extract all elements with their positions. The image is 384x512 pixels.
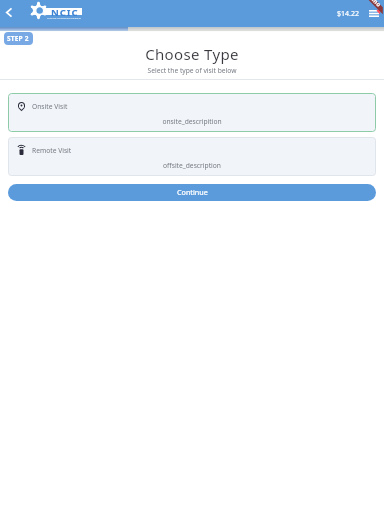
- staticText: offsite_description: [8, 161, 376, 170]
- staticText: Onsite Visit: [32, 102, 68, 111]
- staticText: Choose Type: [0, 44, 384, 64]
- staticText: Select the type of visit below: [0, 66, 384, 75]
- staticText: onsite_descripition: [8, 117, 376, 126]
- button[interactable]: Onsite Visit: [8, 93, 376, 132]
- button[interactable]: Continue: [8, 184, 376, 201]
- button[interactable]: Back: [1, 0, 17, 27]
- button[interactable]: Remote Visit: [8, 137, 376, 176]
- staticText: INMATE COMMUNICATIONS: [47, 16, 81, 19]
- button[interactable]: Menu: [365, 0, 381, 27]
- staticText: STEP 2: [7, 34, 29, 43]
- staticText: demo: [365, 0, 383, 9]
- button[interactable]: STEP 2: [4, 32, 33, 45]
- staticText: NCIC: [51, 6, 79, 19]
- staticText: $14.22: [337, 9, 359, 19]
- staticText: Continue: [177, 187, 208, 197]
- staticText: Remote Visit: [32, 146, 72, 155]
